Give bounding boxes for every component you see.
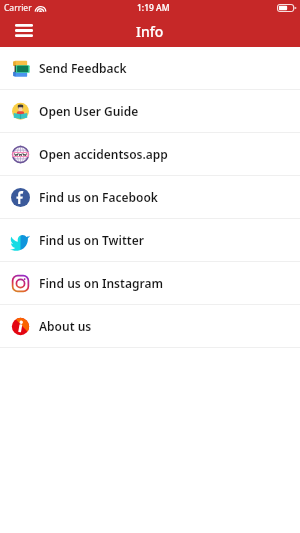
staticText: Carrier	[4, 2, 32, 14]
staticText: Info	[136, 22, 164, 41]
staticText: 1:19 AM	[137, 2, 170, 14]
button[interactable]: Find us on Instagram	[0, 262, 300, 304]
staticText: About us	[39, 318, 92, 334]
staticText: Open User Guide	[39, 103, 139, 119]
button[interactable]: About us	[0, 305, 300, 347]
staticText: Find us on Twitter	[39, 232, 144, 248]
button[interactable]: Find us on Facebook	[0, 176, 300, 218]
button[interactable]: Send Feedback	[0, 47, 300, 89]
staticText: Send Feedback	[39, 60, 127, 76]
staticText: Open accidentsos.app	[39, 146, 168, 162]
button[interactable]: Open User Guide	[0, 90, 300, 132]
staticText: Find us on Instagram	[39, 275, 163, 291]
button[interactable]: Open accidentsos.app	[0, 133, 300, 175]
button[interactable]: Menu	[11, 18, 37, 42]
button[interactable]: Find us on Twitter	[0, 219, 300, 261]
staticText: Find us on Facebook	[39, 189, 158, 205]
